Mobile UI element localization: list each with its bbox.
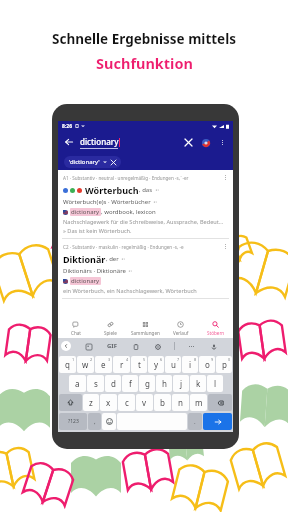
button[interactable]: x	[100, 394, 117, 411]
button[interactable]: More	[186, 341, 197, 352]
button[interactable]: ,	[88, 413, 101, 430]
staticText: 8	[194, 357, 197, 362]
button[interactable]: s	[87, 375, 104, 392]
staticText: GIF	[107, 342, 117, 350]
button[interactable]: Send	[203, 413, 232, 430]
button[interactable]: o	[199, 356, 215, 373]
button[interactable]: GIF	[105, 340, 119, 352]
staticText: Verlauf	[173, 330, 189, 336]
staticText: » Das ist kein Wörterbuch.	[63, 227, 132, 235]
button[interactable]: Sammlungen	[128, 318, 163, 338]
button[interactable]: Translate	[199, 136, 212, 149]
staticText: Diktionär	[63, 253, 106, 265]
button[interactable]: u	[165, 356, 181, 373]
staticText: q	[65, 359, 70, 370]
button[interactable]: r	[113, 356, 130, 373]
button[interactable]: b	[154, 394, 171, 411]
staticText: i	[189, 359, 192, 370]
staticText: 0	[228, 357, 231, 362]
staticText: 2	[90, 357, 93, 362]
staticText: C2 · Substantiv · maskulin · regelmäßig …	[63, 244, 184, 250]
staticText: s	[94, 378, 98, 389]
button[interactable]: q	[59, 356, 76, 373]
button[interactable]: Voice input	[208, 341, 219, 352]
staticText: Sammlungen	[131, 330, 160, 336]
staticText: ?123	[68, 418, 79, 425]
button[interactable]: f	[122, 375, 138, 392]
button[interactable]: Expand	[61, 341, 71, 351]
staticText: t	[138, 359, 141, 370]
button[interactable]: i	[182, 356, 198, 373]
staticText: v	[142, 397, 147, 408]
staticText: , das	[139, 186, 153, 194]
staticText: d	[111, 378, 116, 389]
staticText: g	[145, 378, 150, 389]
staticText: Wörterbuch	[85, 184, 139, 196]
staticText: Spiele	[104, 330, 117, 336]
button[interactable]: Verlauf	[163, 318, 198, 338]
staticText: j	[180, 378, 183, 389]
button[interactable]: w	[77, 356, 94, 373]
button[interactable]: Entry options	[223, 242, 228, 251]
button[interactable]: A1 · Substantiv · neutral · unregelmäßig…	[58, 170, 233, 238]
button[interactable]: d	[105, 375, 121, 392]
button[interactable]: Back	[63, 136, 75, 148]
staticText: o	[205, 359, 210, 370]
button[interactable]: e	[95, 356, 112, 373]
staticText: ,	[94, 418, 96, 426]
staticText: l	[214, 378, 217, 389]
staticText: a	[75, 378, 80, 389]
button[interactable]: z	[83, 394, 99, 411]
button[interactable]: ?123	[59, 413, 87, 430]
staticText: m	[195, 397, 203, 408]
button[interactable]: Clipboard	[130, 341, 141, 352]
staticText: dictionary	[71, 277, 100, 285]
staticText: z	[89, 397, 93, 408]
button[interactable]: g	[139, 375, 155, 392]
staticText: ein Wörterbuch, ein Nachschlagewerk, Wör…	[63, 287, 197, 295]
staticText: e	[101, 359, 106, 370]
staticText: Suchfunktion	[96, 53, 193, 73]
staticText: b	[160, 397, 165, 408]
staticText: Diktionärs · Diktionäre	[63, 267, 126, 275]
button[interactable]: Spiele	[93, 318, 128, 338]
button[interactable]: h	[156, 375, 172, 392]
staticText: , wordbook, lexicon	[101, 208, 156, 216]
button[interactable]: l	[207, 375, 223, 392]
staticText: 9	[211, 357, 214, 362]
button[interactable]: C2 · Substantiv · maskulin · regelmäßig …	[58, 239, 233, 298]
staticText: h	[162, 378, 167, 389]
button[interactable]: t	[131, 356, 147, 373]
button[interactable]: y	[148, 356, 164, 373]
button[interactable]: j	[173, 375, 189, 392]
button[interactable]: m	[190, 394, 207, 411]
button[interactable]: Backspace	[208, 394, 232, 411]
staticText: dictionary	[71, 208, 100, 216]
button[interactable]: .	[188, 413, 202, 430]
button[interactable]: More options	[216, 136, 228, 148]
staticText: w	[82, 359, 89, 370]
staticText: A1 · Substantiv · neutral · unregelmäßig…	[63, 175, 189, 181]
staticText: 3	[108, 357, 111, 362]
button[interactable]: p	[216, 356, 232, 373]
button[interactable]: 'dictionary'	[69, 156, 116, 168]
button[interactable]: Chat	[58, 318, 93, 338]
button[interactable]: Stöbern	[198, 318, 233, 338]
staticText: Wörterbuch(e)s · Wörterbücher	[63, 198, 151, 206]
button[interactable]: Clear	[182, 136, 195, 149]
button[interactable]: Emoji	[102, 413, 116, 430]
button[interactable]: a	[69, 375, 86, 392]
staticText: 4	[126, 357, 129, 362]
button[interactable]: n	[172, 394, 189, 411]
button[interactable]: Settings	[152, 341, 163, 352]
button[interactable]: Stickers	[83, 341, 94, 352]
button[interactable]: v	[136, 394, 153, 411]
button[interactable]: Entry options	[223, 173, 228, 182]
button[interactable]: k	[190, 375, 206, 392]
button[interactable]: Shift	[59, 394, 82, 411]
staticText: 1	[72, 357, 75, 362]
staticText: n	[178, 397, 183, 408]
button[interactable]: c	[118, 394, 135, 411]
staticText: c	[125, 397, 129, 408]
